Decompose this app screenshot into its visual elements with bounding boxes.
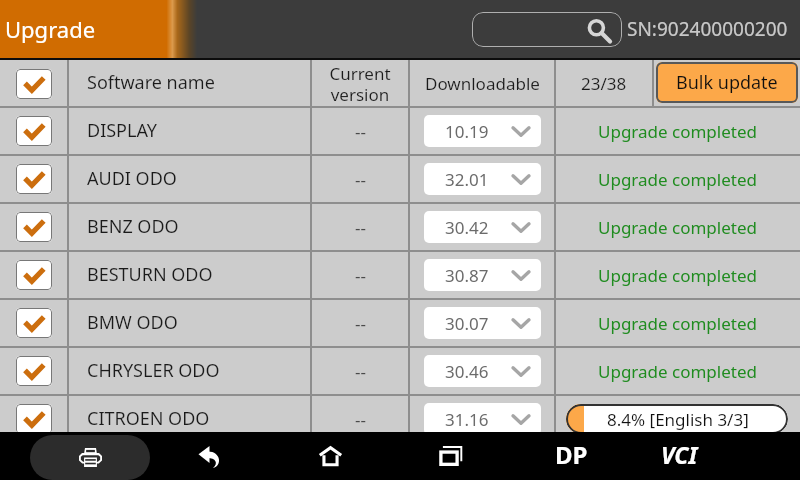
button[interactable]: Selected (16, 308, 52, 338)
staticText: CHRYSLER ODO (87, 358, 220, 383)
staticText: 8.4% [English 3/3] (607, 408, 749, 431)
staticText: 30.46 (445, 360, 489, 383)
staticText: AUDI ODO (87, 166, 177, 191)
staticText: -- (355, 120, 366, 143)
staticText: Downloadable (425, 72, 540, 95)
button[interactable]: Selected (16, 260, 52, 290)
button[interactable]: Selected (0, 251, 800, 299)
staticText: Upgrade completed (598, 312, 757, 335)
staticText: Software name (87, 70, 215, 95)
staticText: BENZ ODO (87, 214, 179, 239)
button[interactable]: Version 30.07 (424, 307, 541, 339)
button[interactable]: Selected (16, 212, 52, 242)
staticText: 10.19 (445, 120, 489, 143)
staticText: Upgrade completed (598, 360, 757, 383)
staticText: 23/38 (581, 72, 627, 95)
staticText: -- (355, 408, 366, 431)
button[interactable]: Selected (16, 404, 52, 434)
staticText: DP (555, 438, 588, 471)
staticText: Upgrade completed (598, 168, 757, 191)
button[interactable]: Selected (0, 203, 800, 251)
button[interactable]: Selected (16, 69, 52, 99)
button[interactable]: Version 30.46 (424, 355, 541, 387)
staticText: 31.16 (445, 408, 489, 431)
staticText: Upgrade (5, 14, 96, 44)
staticText: CITROEN ODO (87, 406, 210, 431)
staticText: BMW ODO (87, 310, 178, 335)
button[interactable]: Back (185, 432, 235, 480)
button[interactable]: Version 10.19 (424, 115, 541, 147)
button[interactable]: DP (541, 432, 601, 480)
button[interactable]: Recent apps (425, 432, 475, 480)
button[interactable]: Version 30.87 (424, 259, 541, 291)
staticText: -- (355, 168, 366, 191)
staticText: -- (355, 216, 366, 239)
button[interactable]: 8.4% [English 3/3] (566, 404, 788, 434)
staticText: Upgrade completed (598, 216, 757, 239)
staticText: -- (355, 360, 366, 383)
staticText: Current version (329, 62, 391, 106)
button[interactable]: Selected (0, 299, 800, 347)
button[interactable]: Selected (16, 116, 52, 146)
staticText: Bulk update (676, 70, 778, 95)
button[interactable]: Selected (0, 107, 800, 155)
button[interactable]: VCI (649, 432, 709, 480)
button[interactable]: Selected (16, 164, 52, 194)
staticText: -- (355, 312, 366, 335)
staticText: SN:902400000200 (627, 16, 788, 42)
button[interactable]: Selected (0, 155, 800, 203)
button[interactable]: Search (472, 12, 622, 47)
staticText: VCI (661, 439, 698, 470)
staticText: BESTURN ODO (87, 262, 213, 287)
button[interactable]: Selected (0, 347, 800, 395)
button[interactable]: Print (30, 435, 150, 480)
staticText: Upgrade completed (598, 264, 757, 287)
staticText: 30.42 (445, 216, 489, 239)
button[interactable]: Selected (16, 356, 52, 386)
staticText: Upgrade completed (598, 120, 757, 143)
staticText: 30.07 (445, 312, 489, 335)
staticText: DISPLAY (87, 118, 158, 143)
button[interactable]: Version 30.42 (424, 211, 541, 243)
staticText: 32.01 (445, 168, 489, 191)
staticText: -- (355, 264, 366, 287)
button[interactable]: Bulk update (656, 62, 798, 103)
button[interactable]: Version 31.16 (424, 403, 541, 435)
button[interactable]: Version 32.01 (424, 163, 541, 195)
button[interactable]: Home (305, 432, 355, 480)
button[interactable]: Upgrade (0, 0, 197, 58)
staticText: 30.87 (445, 264, 489, 287)
button[interactable]: Selected (0, 395, 800, 443)
